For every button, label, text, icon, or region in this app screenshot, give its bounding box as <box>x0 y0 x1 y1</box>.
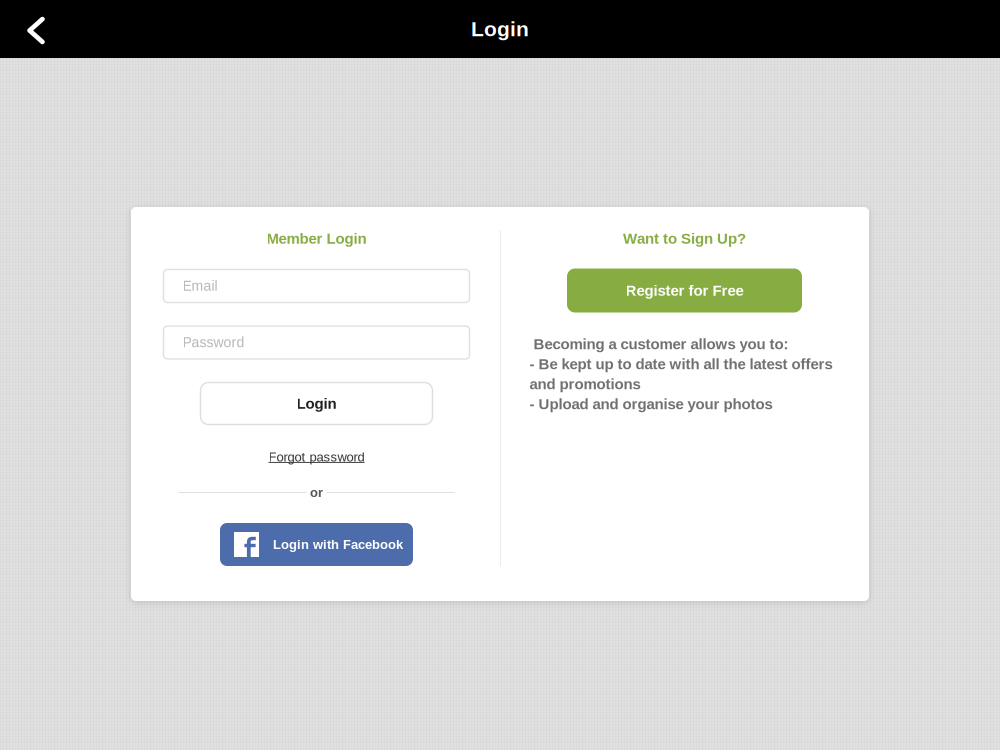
button[interactable]: Register for Free <box>567 268 802 312</box>
staticText: Member Login <box>266 230 366 247</box>
staticText: Email <box>182 278 217 294</box>
staticText: Login <box>296 395 336 412</box>
staticText: and promotions <box>529 376 640 392</box>
staticText: Becoming a customer allows you to: <box>529 336 788 352</box>
staticText: - Upload and organise your photos <box>529 396 772 412</box>
button[interactable]: Password <box>163 326 469 359</box>
staticText: Want to Sign Up? <box>623 230 746 247</box>
button[interactable]: Back <box>0 0 70 58</box>
staticText: Password <box>182 335 244 350</box>
button[interactable]: Login <box>200 382 432 424</box>
staticText: Register for Free <box>625 282 743 299</box>
staticText: Forgot password <box>268 450 364 464</box>
button[interactable]: Login with Facebook <box>220 523 413 566</box>
staticText: Login <box>471 17 529 41</box>
staticText: or <box>310 485 323 500</box>
staticText: - Be kept up to date with all the latest… <box>529 356 832 372</box>
staticText: Login with Facebook <box>273 537 403 552</box>
button[interactable]: Forgot password <box>246 446 386 468</box>
button[interactable]: Email <box>163 269 469 302</box>
